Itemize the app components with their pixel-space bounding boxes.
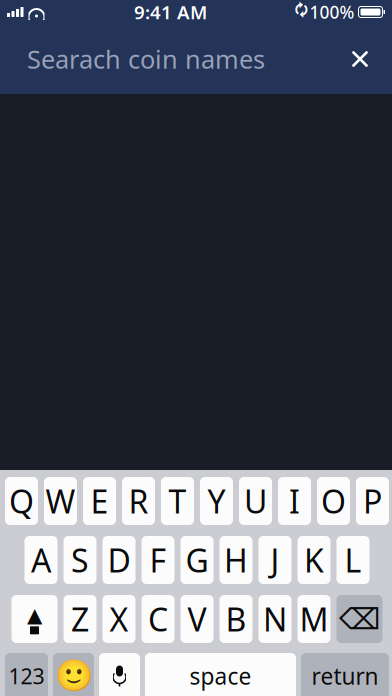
staticText: Q <box>9 480 34 522</box>
staticText: N <box>263 598 287 640</box>
staticText: A <box>31 539 51 581</box>
staticText: Y <box>207 480 225 522</box>
staticText: T <box>168 480 186 522</box>
button[interactable]: Emoji <box>53 653 94 696</box>
staticText: D <box>107 539 130 581</box>
button[interactable]: Y <box>200 477 233 525</box>
staticText: U <box>244 480 267 522</box>
staticText: V <box>187 598 206 640</box>
button[interactable]: Delete <box>336 595 382 643</box>
button[interactable]: P <box>356 477 389 525</box>
button[interactable]: X <box>102 595 135 643</box>
staticText: 123 <box>8 662 44 690</box>
button[interactable]: I <box>278 477 311 525</box>
button[interactable]: M <box>297 595 330 643</box>
staticText: 🗘 <box>294 0 307 24</box>
staticText: return <box>311 661 378 691</box>
staticText: F <box>149 539 166 581</box>
staticText: O <box>321 480 346 522</box>
button[interactable]: D <box>102 536 135 584</box>
button[interactable]: Z <box>63 595 96 643</box>
button[interactable]: W <box>44 477 77 525</box>
staticText: space <box>189 661 251 691</box>
button[interactable]: L <box>336 536 369 584</box>
staticText: P <box>363 480 382 522</box>
button[interactable]: J <box>258 536 291 584</box>
staticText: G <box>185 539 208 581</box>
button[interactable]: F <box>141 536 174 584</box>
button[interactable]: A <box>24 536 57 584</box>
button[interactable]: Shift <box>11 595 57 643</box>
button[interactable]: O <box>317 477 350 525</box>
button[interactable]: S <box>63 536 96 584</box>
staticText: L <box>344 539 361 581</box>
staticText: M <box>299 598 328 640</box>
button[interactable]: N <box>258 595 291 643</box>
button[interactable]: Q <box>5 477 38 525</box>
button[interactable]: V <box>180 595 213 643</box>
button[interactable]: G <box>180 536 213 584</box>
button[interactable]: H <box>219 536 252 584</box>
button[interactable]: B <box>219 595 252 643</box>
staticText: 100% <box>309 0 354 23</box>
button[interactable]: Clear search <box>338 37 382 81</box>
staticText: W <box>45 480 75 522</box>
staticText: B <box>225 598 246 640</box>
staticText: I <box>289 480 300 522</box>
staticText: Z <box>71 598 89 640</box>
button[interactable]: R <box>122 477 155 525</box>
staticText: 9:41 AM <box>134 0 207 24</box>
staticText: H <box>224 539 248 581</box>
button[interactable]: U <box>239 477 272 525</box>
staticText: ▲ <box>27 604 42 626</box>
button[interactable]: 123 <box>5 653 48 696</box>
staticText: Searach coin names <box>27 42 265 76</box>
button[interactable]: C <box>141 595 174 643</box>
staticText: K <box>304 539 324 581</box>
staticText: ⌫ <box>339 602 380 636</box>
button[interactable]: Dictation <box>99 653 140 696</box>
button[interactable]: K <box>297 536 330 584</box>
button[interactable]: return <box>301 653 389 696</box>
staticText: J <box>270 539 279 581</box>
button[interactable]: T <box>161 477 194 525</box>
button[interactable]: space <box>145 653 296 696</box>
staticText: S <box>71 539 89 581</box>
staticText: R <box>128 480 148 522</box>
staticText: C <box>148 598 168 640</box>
staticText: X <box>109 598 128 640</box>
button[interactable]: E <box>83 477 116 525</box>
staticText: 🙂 <box>54 658 92 693</box>
staticText: E <box>90 480 108 522</box>
